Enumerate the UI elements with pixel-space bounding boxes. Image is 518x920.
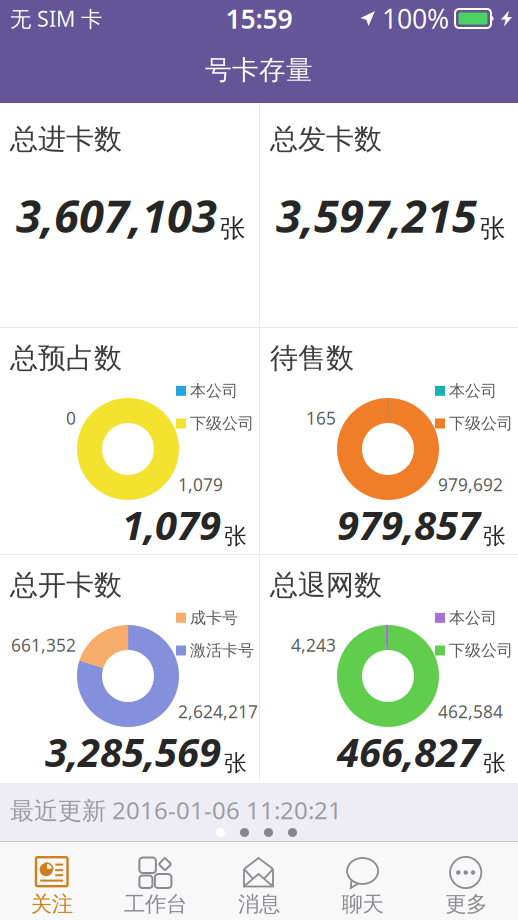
staticText: 462,584: [438, 700, 503, 723]
staticText: 总发卡数: [270, 122, 382, 156]
staticText: 总开卡数: [10, 568, 122, 602]
staticText: 本公司: [449, 381, 497, 401]
staticText: 4,243: [291, 633, 336, 656]
staticText: 无 SIM 卡: [10, 4, 102, 33]
button[interactable]: 消息: [207, 842, 311, 920]
staticText: 1,079: [122, 498, 221, 551]
staticText: 466,827: [337, 725, 480, 778]
staticText: 激活卡号: [190, 641, 254, 660]
button[interactable]: 关注: [0, 842, 104, 920]
staticText: 本公司: [449, 608, 497, 628]
staticText: 0: [66, 406, 76, 429]
staticText: 消息: [238, 891, 280, 917]
staticText: 1,079: [178, 473, 223, 496]
staticText: 165: [306, 406, 336, 429]
button[interactable]: 更多: [414, 842, 518, 920]
button[interactable]: 聊天: [311, 842, 414, 920]
staticText: 100%: [382, 1, 449, 36]
staticText: 下级公司: [449, 414, 513, 433]
staticText: 下级公司: [190, 414, 254, 433]
staticText: 总退网数: [270, 568, 382, 602]
staticText: 关注: [31, 891, 73, 917]
staticText: 3,597,215: [276, 185, 477, 245]
staticText: 号卡存量: [205, 54, 313, 86]
staticText: 下级公司: [449, 641, 513, 660]
staticText: 待售数: [270, 341, 354, 375]
button[interactable]: 工作台: [104, 842, 207, 920]
staticText: 15:59: [225, 1, 292, 36]
staticText: 总进卡数: [10, 122, 122, 156]
staticText: 工作台: [124, 891, 187, 917]
staticText: 979,857: [337, 498, 480, 551]
staticText: 张: [224, 522, 247, 550]
staticText: 张: [480, 213, 505, 244]
staticText: 张: [220, 213, 245, 244]
staticText: 本公司: [190, 381, 238, 401]
staticText: 3,285,569: [45, 725, 221, 778]
staticText: 总预占数: [10, 341, 122, 375]
staticText: 3,607,103: [16, 185, 217, 245]
staticText: 张: [483, 522, 506, 550]
staticText: 聊天: [342, 891, 384, 917]
staticText: 更多: [445, 891, 487, 917]
staticText: 最近更新 2016-01-06 11:20:21: [10, 794, 342, 826]
staticText: 成卡号: [190, 608, 238, 628]
staticText: 979,692: [438, 473, 503, 496]
staticText: 2,624,217: [178, 700, 258, 723]
staticText: 张: [483, 749, 506, 777]
staticText: 张: [224, 749, 247, 777]
staticText: 661,352: [11, 633, 76, 656]
